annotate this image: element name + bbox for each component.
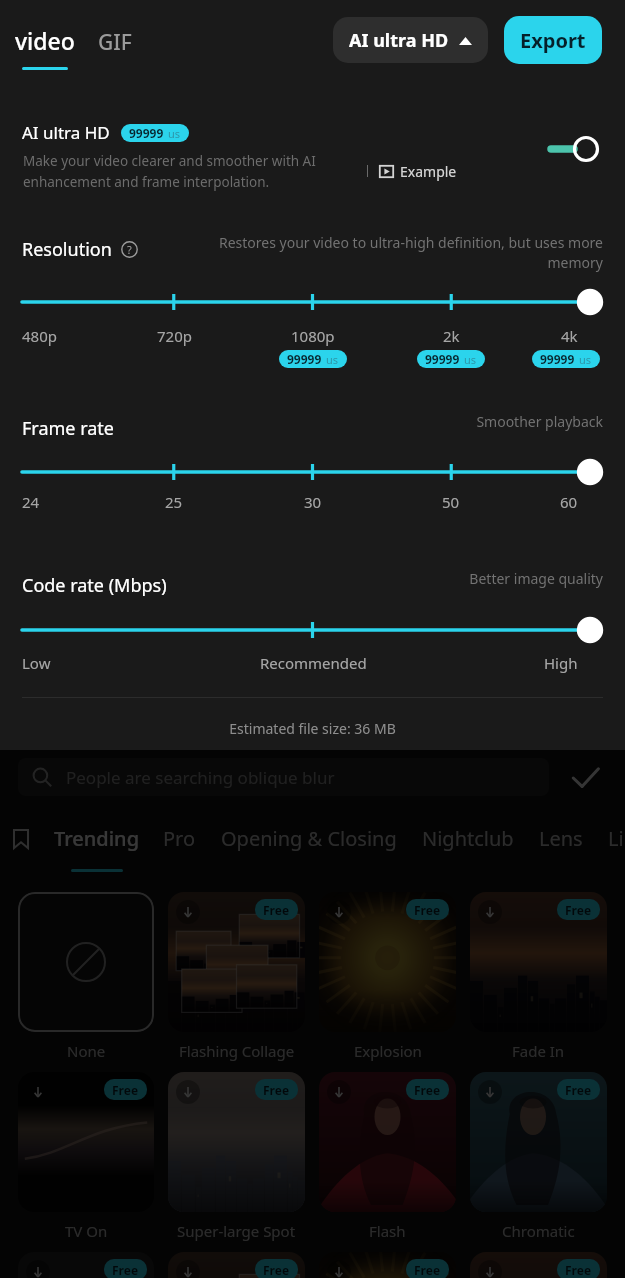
- staticText: AI ultra HD: [349, 28, 449, 53]
- staticText: 99999: [129, 125, 164, 141]
- staticText: 30: [304, 492, 322, 512]
- button[interactable]: Free: [470, 1252, 607, 1278]
- staticText: Pro: [163, 825, 196, 852]
- staticText: GIF: [98, 28, 132, 57]
- staticText: Restores your video to ultra-high defini…: [218, 233, 603, 273]
- button[interactable]: Free: [18, 1072, 154, 1212]
- button[interactable]: Free: [319, 892, 456, 1032]
- staticText: video: [15, 25, 75, 56]
- staticText: Recommended: [260, 653, 367, 673]
- staticText: Free: [263, 1262, 290, 1278]
- staticText: Code rate (Mbps): [22, 573, 167, 598]
- staticText: Chromatic: [502, 1221, 575, 1241]
- button[interactable]: AI ultra HD: [333, 17, 488, 63]
- staticText: Export: [520, 27, 586, 54]
- button[interactable]: video: [15, 25, 75, 70]
- staticText: Nightclub: [422, 825, 514, 852]
- staticText: Explosion: [354, 1041, 422, 1061]
- staticText: Li: [608, 825, 624, 852]
- button[interactable]: Free: [168, 1252, 305, 1278]
- staticText: Trending: [54, 825, 140, 852]
- button[interactable]: Free: [18, 1252, 154, 1278]
- staticText: 2k: [443, 326, 460, 346]
- staticText: Lens: [539, 825, 583, 852]
- staticText: Frame rate: [22, 416, 114, 441]
- button[interactable]: Nightclub: [422, 825, 514, 852]
- staticText: AI ultra HD: [22, 121, 110, 144]
- button[interactable]: Help: [121, 241, 138, 258]
- staticText: 4k: [561, 326, 578, 346]
- button[interactable]: People are searching oblique blur: [18, 758, 549, 796]
- staticText: Flash: [369, 1221, 406, 1241]
- staticText: us: [326, 352, 339, 367]
- button[interactable]: [18, 892, 154, 1032]
- staticText: High: [544, 653, 578, 673]
- button[interactable]: Free: [168, 1072, 305, 1212]
- staticText: Super-large Spot: [177, 1221, 296, 1241]
- staticText: Opening & Closing: [221, 825, 397, 852]
- staticText: 60: [560, 492, 578, 512]
- staticText: TV On: [65, 1221, 108, 1241]
- button[interactable]: GIF: [98, 28, 132, 57]
- staticText: Flashing Collage: [179, 1041, 295, 1061]
- button[interactable]: Free: [319, 1252, 456, 1278]
- staticText: 50: [442, 492, 460, 512]
- staticText: Example: [400, 162, 457, 181]
- button[interactable]: Bookmarks: [4, 822, 38, 856]
- button[interactable]: Free: [470, 892, 607, 1032]
- staticText: Make your video clearer and smoother wit…: [23, 152, 316, 191]
- staticText: us: [579, 352, 592, 367]
- button[interactable]: Confirm: [564, 757, 606, 799]
- staticText: Free: [565, 1262, 592, 1278]
- staticText: 720p: [157, 326, 192, 346]
- staticText: Fade In: [512, 1041, 565, 1061]
- button[interactable]: AI ultra HD toggle: [538, 127, 606, 171]
- staticText: Resolution: [22, 237, 112, 262]
- staticText: Free: [263, 1082, 290, 1098]
- button[interactable]: Free: [470, 1072, 607, 1212]
- staticText: Free: [414, 902, 441, 918]
- staticText: ?: [127, 242, 132, 257]
- staticText: us: [464, 352, 477, 367]
- staticText: Free: [565, 902, 592, 918]
- button[interactable]: Export: [504, 16, 602, 64]
- staticText: 24: [22, 492, 40, 512]
- staticText: Free: [414, 1262, 441, 1278]
- button[interactable]: Lens: [539, 825, 583, 852]
- staticText: Free: [112, 1262, 139, 1278]
- button[interactable]: Example: [379, 162, 457, 181]
- button[interactable]: Free: [319, 1072, 456, 1212]
- staticText: Low: [22, 653, 51, 673]
- button[interactable]: Li: [608, 825, 624, 852]
- staticText: Smoother playback: [353, 412, 603, 431]
- staticText: 25: [165, 492, 183, 512]
- staticText: Free: [263, 902, 290, 918]
- staticText: Free: [414, 1082, 441, 1098]
- staticText: Free: [565, 1082, 592, 1098]
- staticText: None: [67, 1041, 106, 1061]
- staticText: us: [168, 126, 181, 141]
- staticText: Better image quality: [353, 569, 603, 588]
- staticText: 1080p: [291, 326, 335, 346]
- staticText: Free: [112, 1082, 139, 1098]
- staticText: 99999: [287, 351, 322, 367]
- staticText: 480p: [22, 326, 57, 346]
- button[interactable]: Trending: [54, 825, 140, 872]
- staticText: People are searching oblique blur: [66, 766, 335, 789]
- staticText: 99999: [540, 351, 575, 367]
- button[interactable]: Opening & Closing: [221, 825, 397, 852]
- staticText: Estimated file size: 36 MB: [0, 719, 625, 738]
- button[interactable]: Free: [168, 892, 305, 1032]
- staticText: 99999: [425, 351, 460, 367]
- button[interactable]: Pro: [163, 825, 196, 852]
